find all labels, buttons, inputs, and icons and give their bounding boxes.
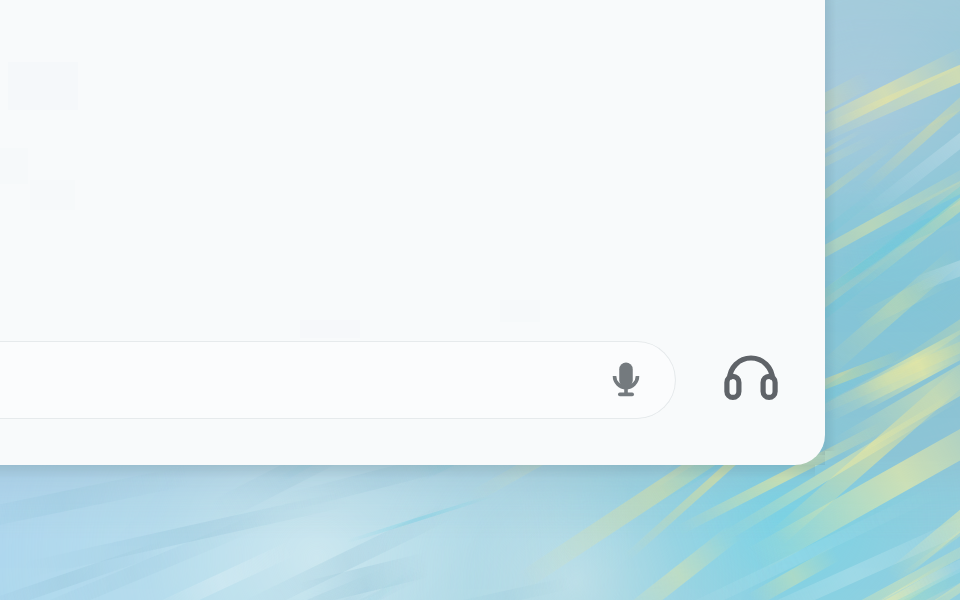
button[interactable]: Headphones	[717, 348, 785, 416]
button[interactable]	[0, 341, 676, 419]
button[interactable]: Voice search	[598, 352, 654, 408]
